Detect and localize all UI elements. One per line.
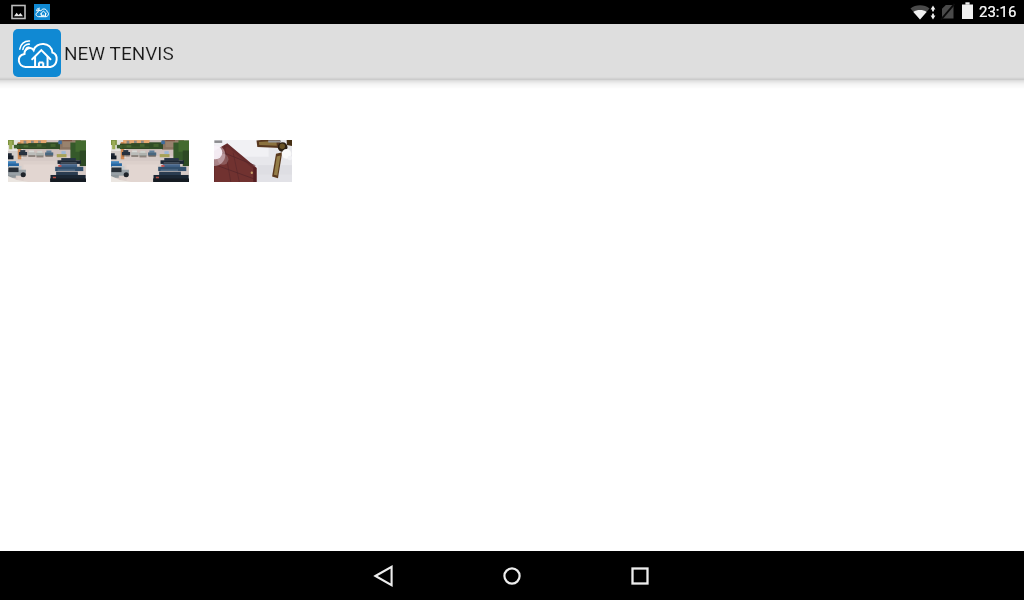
button[interactable]: Camera 3 snapshot [214,140,292,182]
staticText: 23:16 [979,3,1017,21]
button[interactable]: NEW TENVIS app icon [0,24,190,80]
button[interactable]: Camera 2 snapshot [111,140,189,182]
button[interactable]: Back [347,551,421,600]
button[interactable]: Camera 1 snapshot [8,140,86,182]
button[interactable]: NEW TENVIS app icon [13,29,61,77]
staticText: NEW TENVIS [64,42,174,64]
button[interactable]: Recent apps [603,551,677,600]
button[interactable]: Home [475,551,549,600]
